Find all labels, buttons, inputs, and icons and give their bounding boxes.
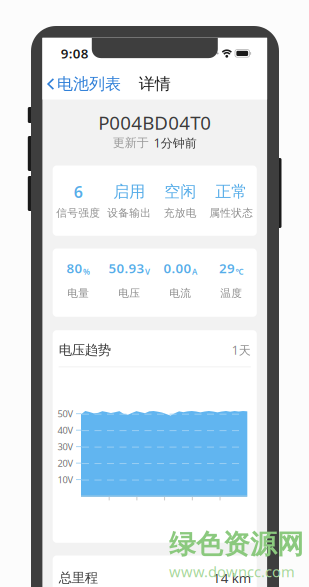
staticText: 50V [57, 407, 73, 420]
staticText: 温度 [220, 287, 242, 300]
staticText: 正常 [215, 182, 247, 202]
staticText: 29 [219, 259, 235, 277]
staticText: 总里程 [59, 570, 98, 586]
staticText: 40V [57, 424, 73, 436]
staticText: 6 [74, 181, 83, 202]
staticText: 1分钟前 [154, 135, 197, 151]
staticText: P004BD04T0 [98, 110, 211, 135]
staticText: 启用 [113, 182, 145, 202]
staticText: 0.00 [164, 259, 192, 277]
staticText: 80 [66, 259, 82, 277]
staticText: 设备输出 [107, 206, 151, 219]
staticText: 电压趋势 [59, 342, 111, 358]
staticText: 30V [57, 440, 73, 453]
staticText: 1天 [232, 342, 251, 358]
staticText: 绿色资源网 [169, 528, 304, 561]
staticText: 空闲 [164, 182, 196, 202]
staticText: 详情 [139, 74, 171, 94]
button[interactable]: 总里程 [53, 555, 257, 587]
button[interactable]: 电池列表 [42, 70, 129, 98]
staticText: % [83, 266, 90, 277]
staticText: 信号强度 [56, 206, 100, 219]
staticText: °C [235, 266, 243, 277]
staticText: 20V [57, 457, 73, 469]
staticText: 充放电 [164, 206, 197, 219]
staticText: 电量 [67, 287, 89, 300]
staticText: 电流 [169, 287, 191, 300]
staticText: 属性状态 [209, 206, 253, 219]
staticText: A [192, 266, 197, 277]
staticText: 50.93 [108, 259, 144, 277]
staticText: 电压 [118, 287, 140, 300]
staticText: 10V [57, 473, 73, 486]
staticText: 9:08 [61, 44, 89, 62]
staticText: 14 km [213, 569, 251, 587]
staticText: V [145, 266, 150, 277]
staticText: www.downcc.com [169, 562, 295, 581]
staticText: 更新于 [113, 135, 149, 150]
staticText: 电池列表 [57, 74, 121, 94]
